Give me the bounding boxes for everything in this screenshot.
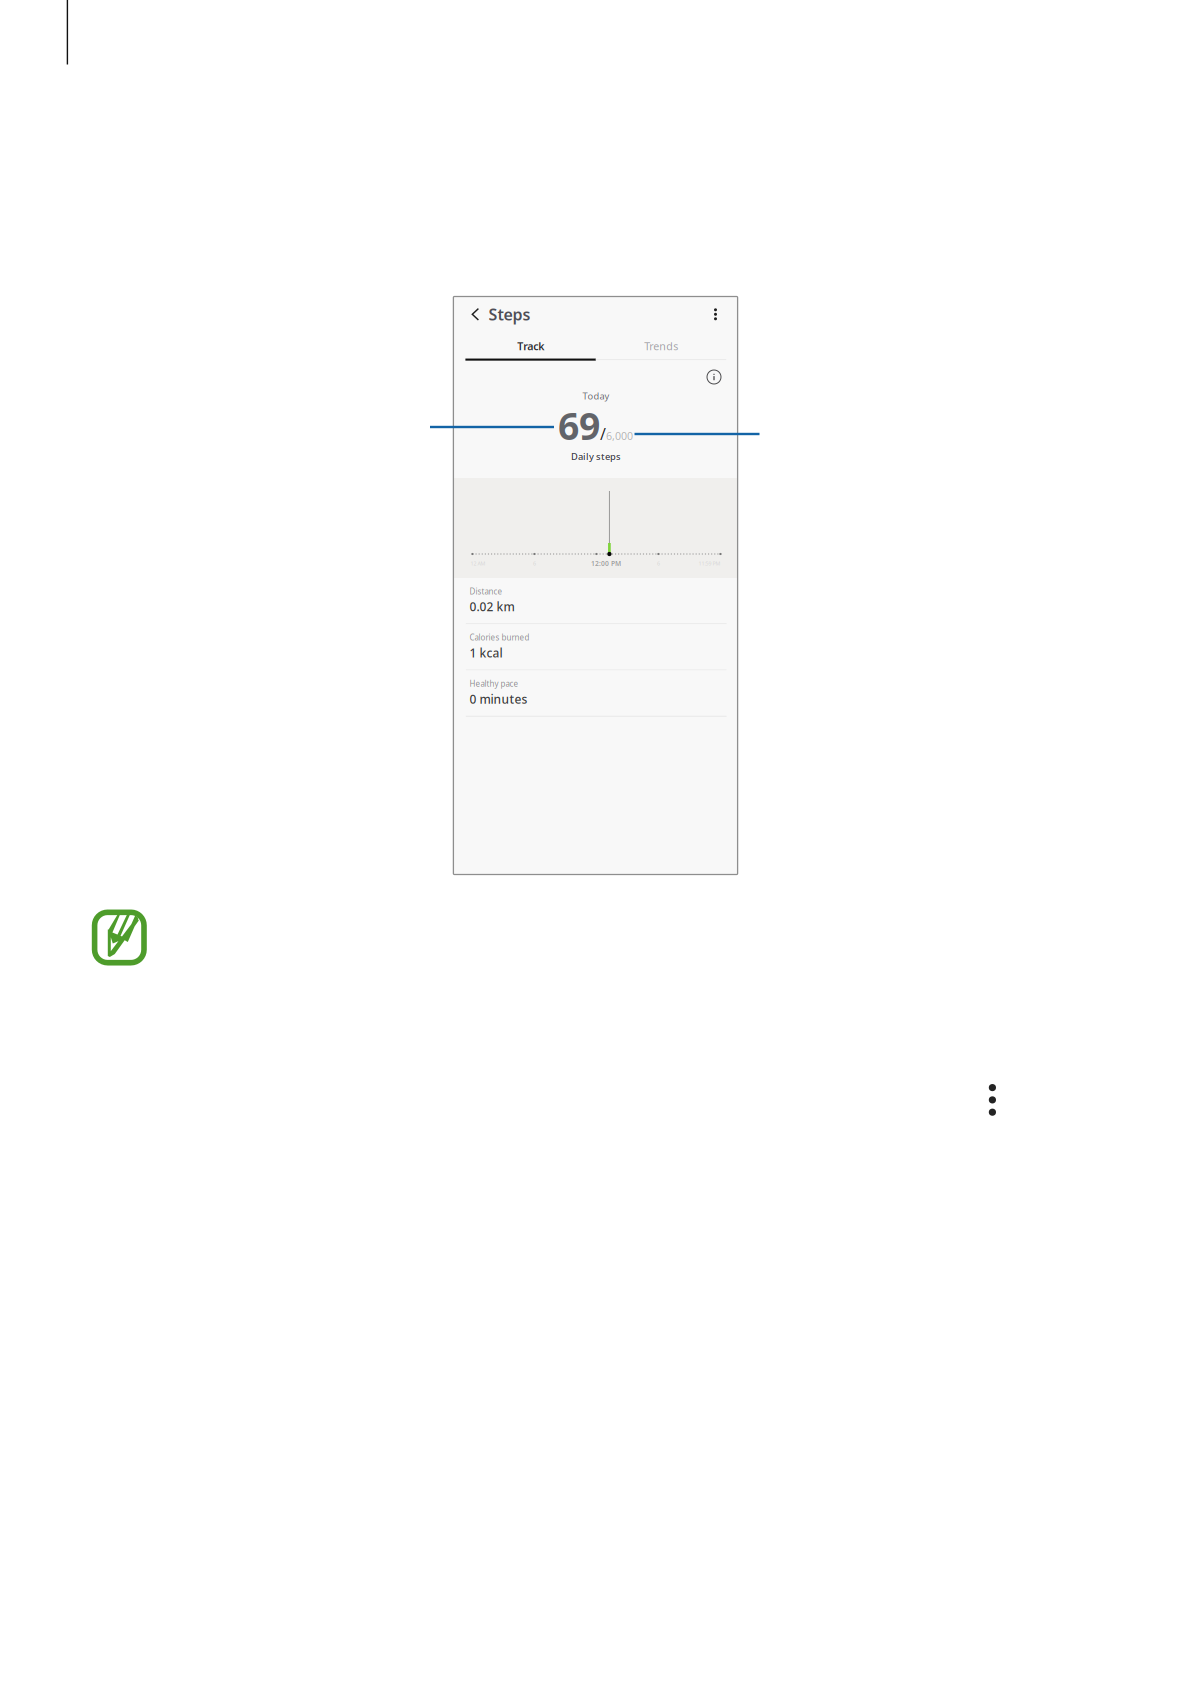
staticText: 1 kcal: [469, 645, 502, 661]
staticText: Distance: [469, 586, 502, 597]
staticText: Steps: [488, 304, 530, 325]
staticText: Daily steps: [571, 450, 621, 463]
staticText: 12 AM: [470, 560, 485, 567]
staticText: 0 minutes: [469, 691, 527, 707]
staticText: Trends: [644, 339, 678, 353]
staticText: 6: [657, 560, 660, 567]
button[interactable]: Track: [466, 332, 596, 360]
staticText: 0.02 km: [469, 599, 514, 614]
button[interactable]: Trends: [596, 332, 726, 360]
button[interactable]: More options: [702, 299, 728, 329]
staticText: /: [600, 423, 606, 444]
staticText: Calories burned: [469, 632, 529, 643]
staticText: Today: [582, 390, 609, 402]
staticText: 12:00 PM: [591, 559, 621, 568]
staticText: 6,000: [606, 429, 633, 443]
staticText: 69: [558, 401, 600, 450]
button[interactable]: Back: [462, 299, 488, 329]
staticText: 6: [533, 560, 536, 567]
staticText: Track: [517, 339, 544, 353]
button[interactable]: Information: [703, 366, 725, 388]
staticText: Healthy pace: [469, 678, 518, 689]
button[interactable]: More options: [982, 1082, 1002, 1118]
staticText: 11:59 PM: [698, 560, 720, 567]
